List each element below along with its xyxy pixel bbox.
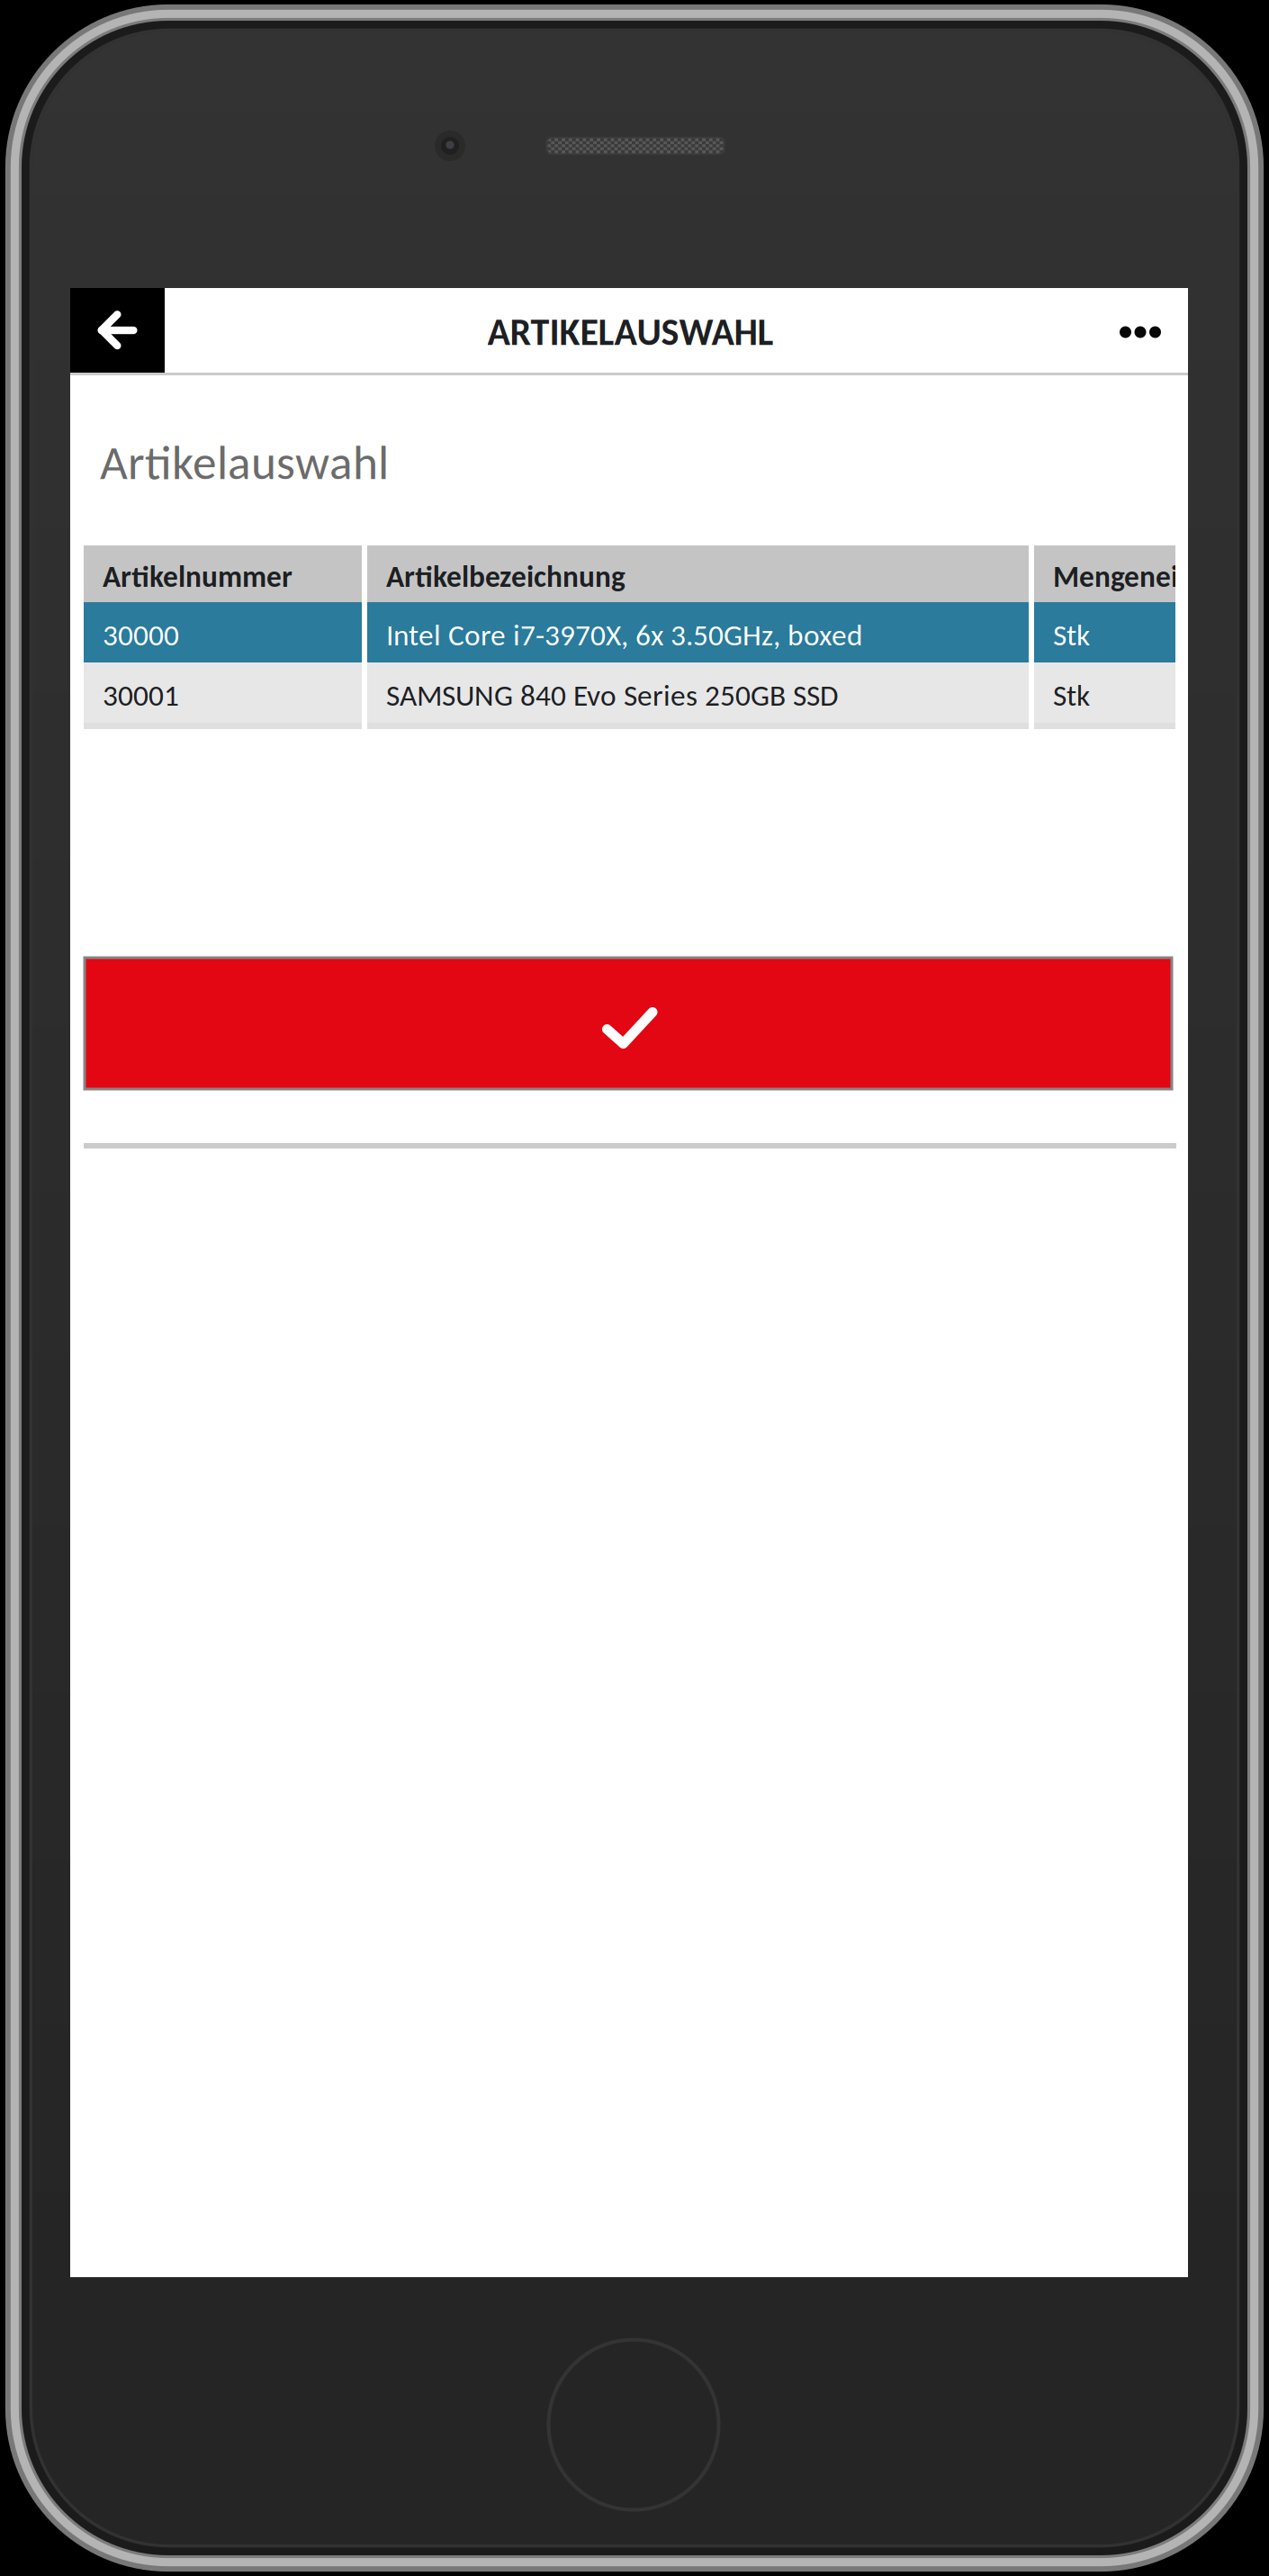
staticText: Stk bbox=[1053, 677, 1090, 714]
staticText: 30000 bbox=[103, 617, 179, 653]
staticText: Stk bbox=[1053, 617, 1090, 653]
button[interactable]: 30000 bbox=[0, 0, 1269, 2576]
staticText: Mengeneinheit bbox=[1053, 558, 1244, 595]
button[interactable]: Confirm selection bbox=[85, 958, 1172, 1089]
staticText: 30001 bbox=[103, 677, 179, 714]
button[interactable]: More options bbox=[1086, 290, 1194, 374]
button[interactable]: Back bbox=[70, 288, 165, 373]
staticText: Artikelauswahl bbox=[100, 433, 389, 492]
staticText: ARTIKELAUSWAHL bbox=[487, 309, 774, 355]
staticText: Artikelbezeichnung bbox=[386, 558, 625, 595]
button[interactable]: 30001 bbox=[0, 0, 1269, 2576]
staticText: Intel Core i7-3970X, 6x 3.50GHz, boxed bbox=[386, 617, 863, 653]
staticText: SAMSUNG 840 Evo Series 250GB SSD bbox=[386, 677, 839, 714]
staticText: Artikelnummer bbox=[103, 558, 292, 595]
